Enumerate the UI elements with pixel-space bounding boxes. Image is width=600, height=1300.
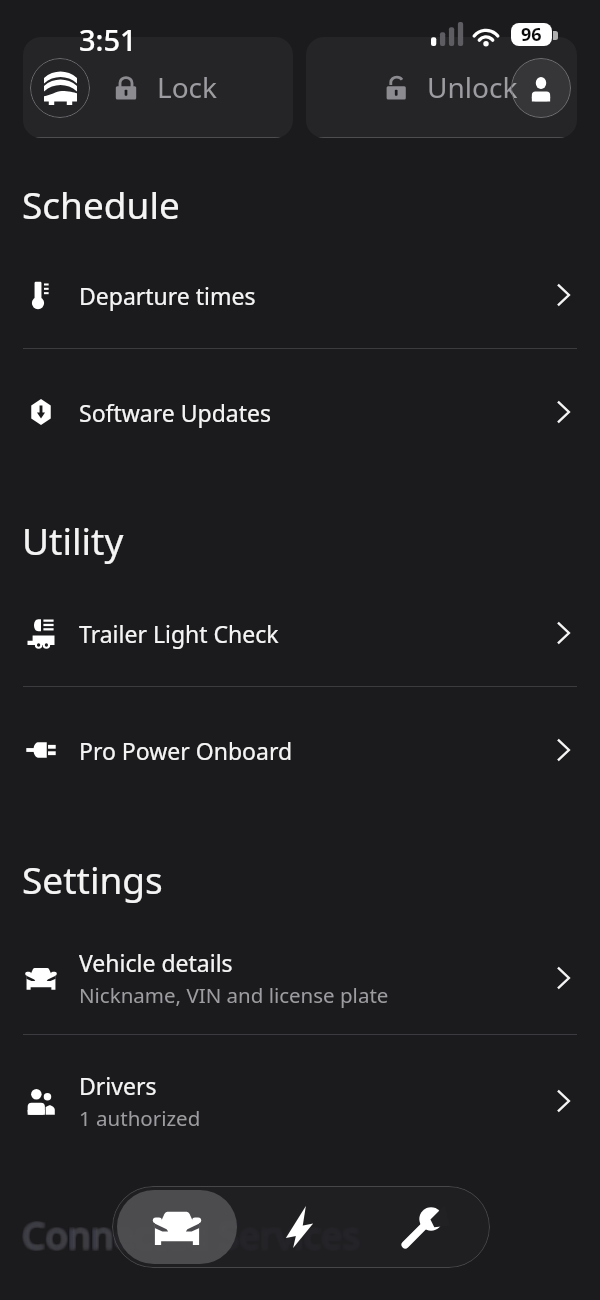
staticText: Connected Services	[22, 1207, 360, 1257]
staticText: Software Updates	[79, 397, 272, 428]
staticText: Lock	[157, 68, 218, 106]
staticText: Connected Services	[22, 1210, 360, 1260]
staticText: Connected Services	[23, 1210, 361, 1260]
staticText: Connected Services	[20, 1207, 358, 1257]
button[interactable]: Software Updates	[0, 360, 600, 464]
button[interactable]: Service	[361, 1190, 485, 1264]
button[interactable]: Unlock	[306, 37, 577, 138]
staticText: Departure times	[79, 280, 256, 311]
staticText: Connected Services	[24, 1210, 362, 1260]
staticText: Connected Services	[23, 1209, 361, 1259]
staticText: Connected Services	[21, 1211, 359, 1261]
staticText: Utility	[22, 515, 124, 565]
staticText: Connected Services	[24, 1208, 362, 1258]
button[interactable]: Departure times	[0, 243, 600, 347]
button[interactable]: Vehicle	[117, 1190, 237, 1264]
staticText: Drivers	[79, 1070, 157, 1101]
button[interactable]: Charging	[237, 1190, 361, 1264]
button[interactable]: Vehicle details	[0, 926, 600, 1030]
staticText: Connected Services	[22, 1208, 360, 1258]
staticText: 1 authorized	[79, 1104, 201, 1132]
staticText: Connected Services	[20, 1211, 358, 1261]
staticText: Settings	[22, 854, 163, 904]
staticText: 96	[521, 23, 542, 45]
button[interactable]: Trailer Light Check	[0, 581, 600, 685]
staticText: Connected Services	[20, 1210, 358, 1260]
staticText: Connected Services	[24, 1211, 362, 1261]
button[interactable]: Lock	[23, 37, 293, 138]
staticText: Connected Services	[24, 1209, 362, 1259]
staticText: Connected Services	[20, 1208, 358, 1258]
staticText: Unlock	[427, 68, 518, 106]
staticText: Schedule	[22, 179, 180, 229]
staticText: 3:51	[79, 20, 137, 59]
staticText: Pro Power Onboard	[79, 735, 293, 766]
staticText: Connected Services	[21, 1209, 359, 1259]
staticText: Connected Services	[21, 1210, 359, 1260]
staticText: Connected Services	[21, 1208, 359, 1258]
staticText: Trailer Light Check	[79, 618, 279, 649]
staticText: Connected Services	[23, 1211, 361, 1261]
button[interactable]: Pro Power Onboard	[0, 698, 600, 802]
staticText: Connected Services	[22, 1211, 360, 1261]
staticText: Connected Services	[22, 1209, 360, 1259]
staticText: Connected Services	[21, 1207, 359, 1257]
staticText: Nickname, VIN and license plate	[79, 981, 389, 1009]
button[interactable]: Drivers	[0, 1049, 600, 1153]
staticText: Connected Services	[23, 1207, 361, 1257]
staticText: Connected Services	[24, 1207, 362, 1257]
staticText: Connected Services	[20, 1209, 358, 1259]
staticText: Connected Services	[23, 1208, 361, 1258]
staticText: Vehicle details	[79, 947, 233, 978]
